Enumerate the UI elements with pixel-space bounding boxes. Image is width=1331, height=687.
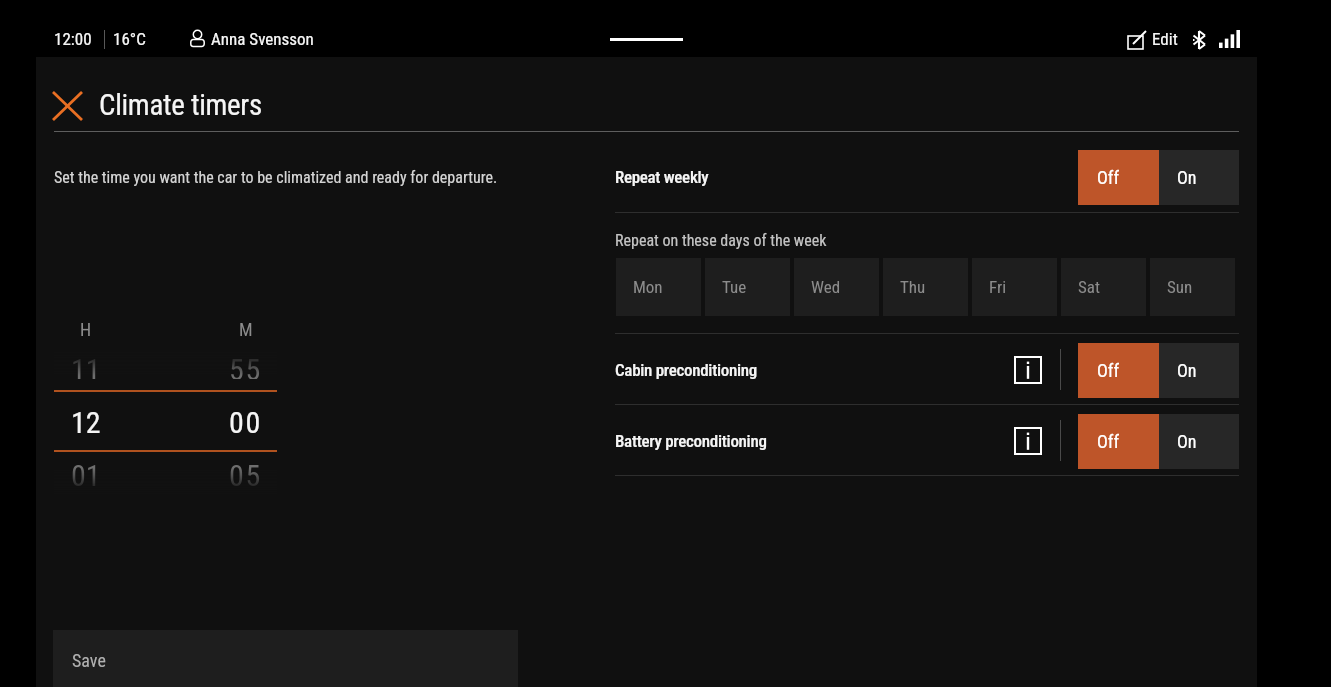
button[interactable]: Mon (616, 258, 701, 316)
button[interactable]: Edit (1126, 25, 1178, 53)
button[interactable]: Off (1078, 343, 1159, 398)
button[interactable]: Sat (1061, 258, 1146, 316)
staticText: 12 (71, 405, 101, 440)
button[interactable]: Hours, 12 (54, 345, 164, 490)
staticText: Cabin preconditioning (615, 360, 758, 380)
button[interactable]: Close (54, 93, 81, 119)
button[interactable]: Thu (883, 258, 968, 316)
staticText: 12:00 (54, 29, 92, 49)
staticText: On (1177, 431, 1197, 452)
staticText: 55 (229, 352, 262, 387)
staticText: On (1177, 360, 1197, 381)
staticText: Climate timers (99, 88, 262, 122)
staticText: Fri (989, 277, 1007, 297)
button[interactable]: Sun (1150, 258, 1235, 316)
button[interactable]: Save (53, 630, 518, 687)
staticText: 00 (229, 405, 262, 440)
other: Bluetooth (1193, 31, 1206, 49)
staticText: Repeat weekly (615, 167, 709, 187)
staticText: 16°C (113, 29, 146, 49)
other: Edit (1128, 30, 1147, 49)
staticText: Save (72, 650, 106, 671)
staticText: Off (1097, 360, 1120, 381)
staticText: Sat (1078, 277, 1100, 297)
staticText: Off (1097, 431, 1120, 452)
button[interactable]: Off (1078, 150, 1159, 205)
staticText: 05 (229, 458, 262, 493)
button[interactable]: Minutes, 00 (167, 345, 277, 490)
staticText: 11 (71, 352, 101, 387)
staticText: Off (1097, 167, 1120, 188)
button[interactable]: On (1159, 343, 1239, 398)
button[interactable]: On (1159, 414, 1239, 469)
button[interactable]: Off (1078, 414, 1159, 469)
staticText: 01 (71, 458, 101, 493)
staticText: Mon (633, 277, 663, 297)
staticText: Thu (900, 277, 926, 297)
staticText: M (239, 319, 253, 340)
staticText: Wed (811, 277, 841, 297)
staticText: Battery preconditioning (615, 431, 767, 451)
staticText: Sun (1167, 277, 1193, 297)
staticText: Set the time you want the car to be clim… (54, 168, 498, 187)
staticText: Repeat on these days of the week (615, 231, 827, 250)
staticText: Tue (722, 277, 747, 297)
other: Signal strength (1219, 30, 1240, 48)
button[interactable]: Fri (972, 258, 1057, 316)
button[interactable]: On (1159, 150, 1239, 205)
button[interactable]: Info about cabin preconditioning (1014, 356, 1042, 384)
staticText: Edit (1152, 29, 1178, 49)
staticText: H (80, 319, 92, 340)
button[interactable]: Info about battery preconditioning (1014, 427, 1042, 455)
button[interactable]: Tue (705, 258, 790, 316)
staticText: On (1177, 167, 1197, 188)
staticText: Anna Svensson (211, 29, 314, 49)
button[interactable]: Wed (794, 258, 879, 316)
